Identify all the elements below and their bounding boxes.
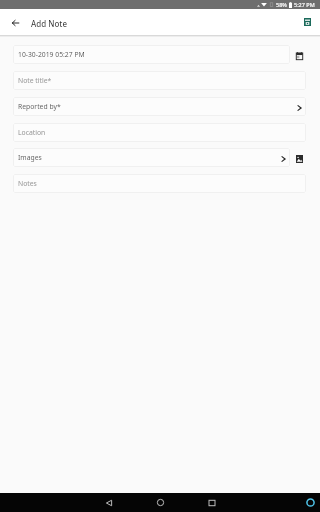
staticText: Note title* bbox=[18, 76, 52, 85]
button[interactable]: Save bbox=[294, 10, 320, 36]
staticText: Location bbox=[18, 128, 46, 137]
button[interactable]: Location bbox=[13, 123, 306, 142]
button[interactable]: Pick image bbox=[290, 148, 306, 167]
staticText: 58% bbox=[276, 1, 287, 8]
button[interactable]: Images bbox=[13, 148, 290, 167]
staticText: Notes bbox=[18, 179, 37, 188]
button[interactable]: Home bbox=[151, 493, 170, 512]
button[interactable]: Recents bbox=[202, 493, 221, 512]
staticText: Images bbox=[18, 153, 42, 162]
button[interactable]: 10-30-2019 05:27 PM bbox=[13, 45, 290, 64]
button[interactable]: Back bbox=[0, 10, 30, 36]
button[interactable]: Reported by* bbox=[13, 97, 306, 116]
button[interactable]: Assistant bbox=[301, 493, 320, 512]
button[interactable]: Note title* bbox=[13, 71, 306, 90]
button[interactable]: Pick date bbox=[290, 45, 306, 64]
staticText: 10-30-2019 05:27 PM bbox=[18, 50, 85, 59]
staticText: Add Note bbox=[31, 18, 67, 29]
button[interactable]: Back bbox=[99, 493, 118, 512]
staticText: 5:27 PM bbox=[294, 1, 315, 8]
button[interactable]: Notes bbox=[13, 174, 306, 193]
staticText: Reported by* bbox=[18, 102, 61, 111]
